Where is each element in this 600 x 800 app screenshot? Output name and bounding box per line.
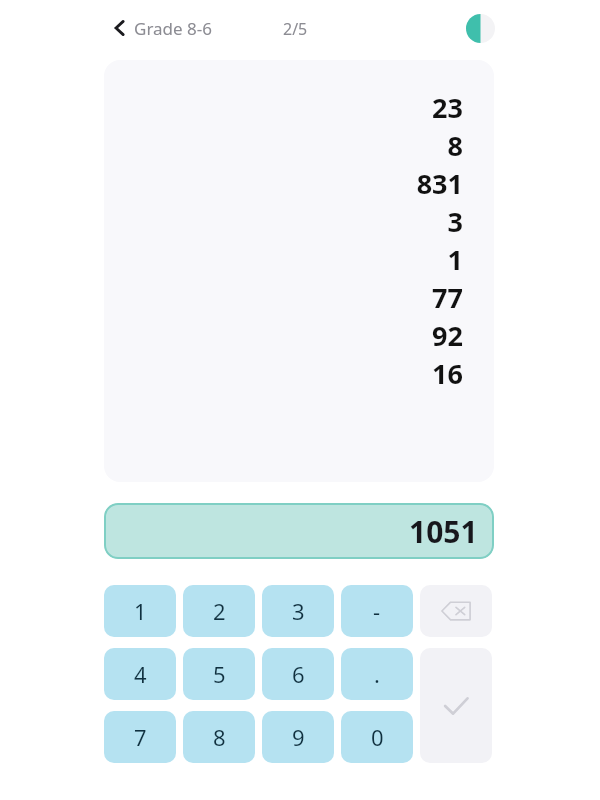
button[interactable]: - bbox=[341, 585, 413, 637]
staticText: 3 bbox=[447, 203, 463, 240]
staticText: 7 bbox=[134, 722, 147, 752]
staticText: 2 bbox=[213, 596, 226, 626]
button[interactable]: 1 bbox=[104, 585, 176, 637]
staticText: 1 bbox=[134, 596, 147, 626]
button[interactable]: 2 bbox=[183, 585, 255, 637]
staticText: 1 bbox=[447, 241, 463, 278]
staticText: 16 bbox=[432, 355, 463, 392]
staticText: 1051 bbox=[409, 511, 478, 552]
staticText: 4 bbox=[134, 659, 147, 689]
staticText: 77 bbox=[432, 279, 463, 316]
button[interactable]: 8 bbox=[183, 711, 255, 763]
staticText: Grade 8-6 bbox=[134, 17, 212, 40]
staticText: 92 bbox=[432, 317, 463, 354]
button[interactable]: Backspace bbox=[420, 585, 492, 637]
button[interactable]: 4 bbox=[104, 648, 176, 700]
staticText: 6 bbox=[292, 659, 305, 689]
staticText: 8 bbox=[213, 722, 226, 752]
button[interactable]: 1051 bbox=[104, 503, 494, 559]
button[interactable]: 7 bbox=[104, 711, 176, 763]
button[interactable]: 3 bbox=[262, 585, 334, 637]
button[interactable]: . bbox=[341, 648, 413, 700]
button[interactable]: 5 bbox=[183, 648, 255, 700]
staticText: 8 bbox=[447, 127, 463, 164]
button[interactable]: Submit bbox=[420, 648, 492, 763]
staticText: 831 bbox=[416, 165, 463, 202]
staticText: . bbox=[374, 659, 380, 689]
button[interactable]: 9 bbox=[262, 711, 334, 763]
button[interactable]: Progress bbox=[462, 10, 498, 46]
button[interactable]: Back bbox=[100, 8, 140, 48]
button[interactable]: 6 bbox=[262, 648, 334, 700]
staticText: 23 bbox=[432, 89, 463, 126]
staticText: 0 bbox=[371, 722, 384, 752]
staticText: 2/5 bbox=[283, 18, 308, 40]
staticText: - bbox=[373, 596, 381, 626]
button[interactable]: 0 bbox=[341, 711, 413, 763]
staticText: 3 bbox=[292, 596, 305, 626]
staticText: 9 bbox=[292, 722, 305, 752]
staticText: 5 bbox=[213, 659, 226, 689]
